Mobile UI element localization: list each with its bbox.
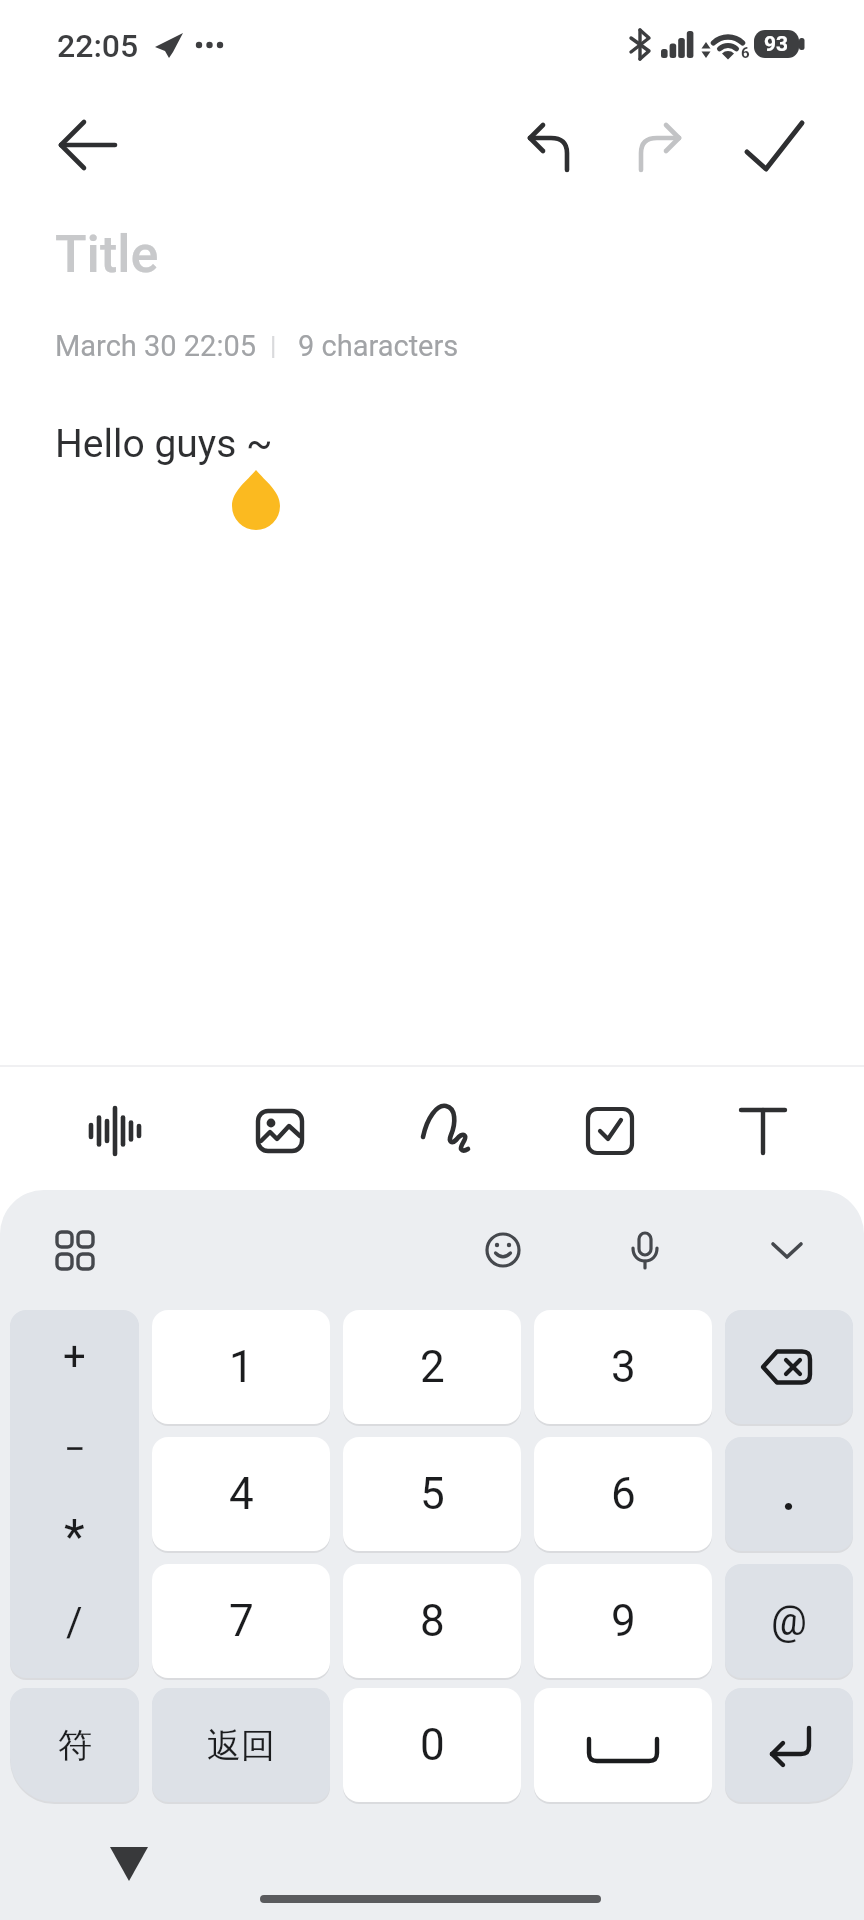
button[interactable]: 0: [343, 1688, 521, 1802]
button[interactable]: [96, 1834, 162, 1894]
button[interactable]: [733, 105, 813, 185]
staticText: 3: [611, 1341, 636, 1393]
button[interactable]: 1: [152, 1310, 330, 1424]
staticText: 5: [420, 1468, 445, 1520]
staticText: 符: [58, 1724, 92, 1767]
staticText: 2: [420, 1341, 445, 1393]
staticText: −: [64, 1427, 86, 1472]
button[interactable]: 5: [343, 1437, 521, 1551]
button[interactable]: [239, 1091, 319, 1171]
button[interactable]: [723, 1091, 803, 1171]
staticText: 返回: [207, 1724, 275, 1767]
button[interactable]: 9: [534, 1564, 712, 1678]
button[interactable]: [43, 1218, 107, 1282]
staticText: 9: [611, 1595, 636, 1647]
staticText: 7: [229, 1595, 254, 1647]
staticText: 93: [764, 32, 789, 57]
staticText: Title: [55, 224, 159, 285]
button[interactable]: [725, 1310, 853, 1424]
staticText: March 30 22:05: [55, 329, 257, 363]
button[interactable]: [406, 1091, 486, 1171]
staticText: 9 characters: [298, 329, 459, 363]
staticText: *: [64, 1508, 85, 1560]
button[interactable]: [74, 1091, 154, 1171]
button[interactable]: [471, 1218, 535, 1282]
staticText: .: [782, 1467, 796, 1521]
button[interactable]: @: [725, 1564, 853, 1678]
button[interactable]: 返回: [152, 1688, 330, 1802]
button[interactable]: [613, 1218, 677, 1282]
staticText: 4: [229, 1468, 254, 1520]
staticText: 8: [420, 1595, 445, 1647]
staticText: 0: [420, 1719, 445, 1771]
button[interactable]: [534, 1688, 712, 1802]
staticText: |: [270, 331, 277, 361]
staticText: Hello guys ~: [55, 421, 273, 467]
button[interactable]: 2: [343, 1310, 521, 1424]
button[interactable]: [755, 1218, 819, 1282]
button[interactable]: [570, 1091, 650, 1171]
button[interactable]: .: [725, 1437, 853, 1551]
button[interactable]: 符: [10, 1688, 139, 1802]
button[interactable]: 3: [534, 1310, 712, 1424]
staticText: @: [771, 1598, 807, 1645]
button[interactable]: [10, 1310, 139, 1678]
staticText: 1: [229, 1341, 254, 1393]
button[interactable]: [619, 105, 699, 185]
staticText: 22:05: [57, 27, 139, 65]
button[interactable]: 6: [534, 1437, 712, 1551]
button[interactable]: [507, 105, 587, 185]
button[interactable]: [725, 1688, 853, 1802]
staticText: 6: [741, 44, 750, 62]
button[interactable]: 7: [152, 1564, 330, 1678]
button[interactable]: [47, 105, 127, 185]
button[interactable]: 4: [152, 1437, 330, 1551]
staticText: /: [66, 1599, 83, 1646]
staticText: +: [63, 1333, 86, 1380]
staticText: 6: [611, 1468, 636, 1520]
button[interactable]: 8: [343, 1564, 521, 1678]
